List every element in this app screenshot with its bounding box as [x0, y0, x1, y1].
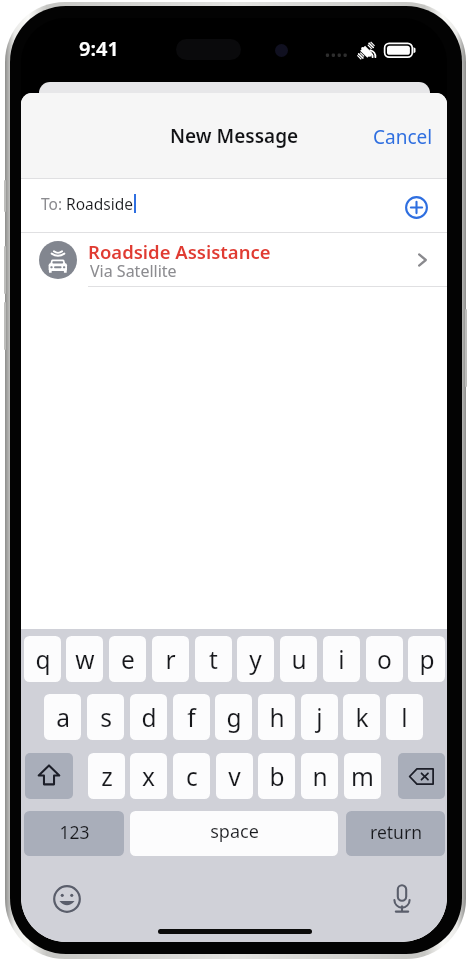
staticText: y [249, 643, 262, 676]
button[interactable]: Dictation [381, 878, 422, 919]
staticText: Cancel [373, 124, 433, 150]
staticText: r [165, 643, 176, 676]
button[interactable]: Add contact [396, 187, 436, 227]
button[interactable]: h [258, 694, 295, 740]
staticText: g [226, 701, 242, 734]
staticText: d [141, 701, 157, 734]
button[interactable]: r [152, 636, 189, 682]
button[interactable]: f [173, 694, 210, 740]
button[interactable]: o [366, 636, 403, 682]
staticText: k [355, 701, 369, 734]
staticText: w [75, 643, 95, 676]
button[interactable]: q [24, 636, 61, 682]
button[interactable]: i [323, 636, 360, 682]
button[interactable]: x [130, 753, 167, 799]
staticText: o [377, 643, 392, 676]
staticText: v [228, 760, 241, 793]
staticText: s [100, 701, 112, 734]
staticText: q [35, 643, 51, 676]
staticText: m [351, 760, 374, 793]
button[interactable]: w [66, 636, 103, 682]
staticText: h [269, 701, 285, 734]
staticText: p [419, 643, 435, 676]
button[interactable]: b [258, 753, 295, 799]
staticText: To: [41, 193, 63, 214]
button[interactable]: Shift [25, 753, 73, 799]
button[interactable]: y [237, 636, 274, 682]
staticText: f [187, 701, 196, 734]
button[interactable]: v [216, 753, 253, 799]
staticText: a [56, 701, 70, 734]
button[interactable]: Emoji keyboard [46, 878, 87, 919]
staticText: return [370, 820, 422, 844]
button[interactable]: e [109, 636, 146, 682]
button[interactable]: d [130, 694, 167, 740]
staticText: z [101, 760, 113, 793]
staticText: n [312, 760, 328, 793]
button[interactable]: z [88, 753, 125, 799]
button[interactable]: Cancel [357, 116, 447, 158]
staticText: j [316, 701, 323, 734]
staticText: Roadside Assistance [88, 239, 271, 264]
button[interactable]: Roadside Assistance [21, 233, 447, 287]
button[interactable]: l [386, 694, 423, 740]
button[interactable]: s [87, 694, 124, 740]
button[interactable]: n [301, 753, 338, 799]
button[interactable]: return [346, 811, 445, 856]
staticText: c [186, 760, 198, 793]
button[interactable]: k [343, 694, 380, 740]
button[interactable]: Backspace [398, 753, 445, 799]
staticText: space [210, 819, 259, 844]
button[interactable]: m [344, 753, 381, 799]
staticText: u [291, 643, 307, 676]
staticText: b [269, 760, 285, 793]
button[interactable]: t [195, 636, 232, 682]
button[interactable]: a [44, 694, 81, 740]
staticText: New Message [170, 123, 299, 149]
staticText: e [121, 643, 135, 676]
button[interactable]: c [173, 753, 210, 799]
staticText: 123 [59, 820, 90, 844]
staticText: 9:41 [79, 35, 119, 62]
button[interactable]: u [280, 636, 317, 682]
staticText: Via Satellite [90, 260, 177, 282]
button[interactable]: p [408, 636, 445, 682]
staticText: x [142, 760, 155, 793]
staticText: i [338, 643, 345, 676]
button[interactable]: j [301, 694, 338, 740]
button[interactable]: 123 [24, 811, 124, 856]
staticText: t [209, 643, 218, 676]
button[interactable]: space [130, 811, 338, 856]
button[interactable]: g [215, 694, 252, 740]
staticText: l [401, 701, 408, 734]
staticText: Roadside [66, 193, 133, 214]
